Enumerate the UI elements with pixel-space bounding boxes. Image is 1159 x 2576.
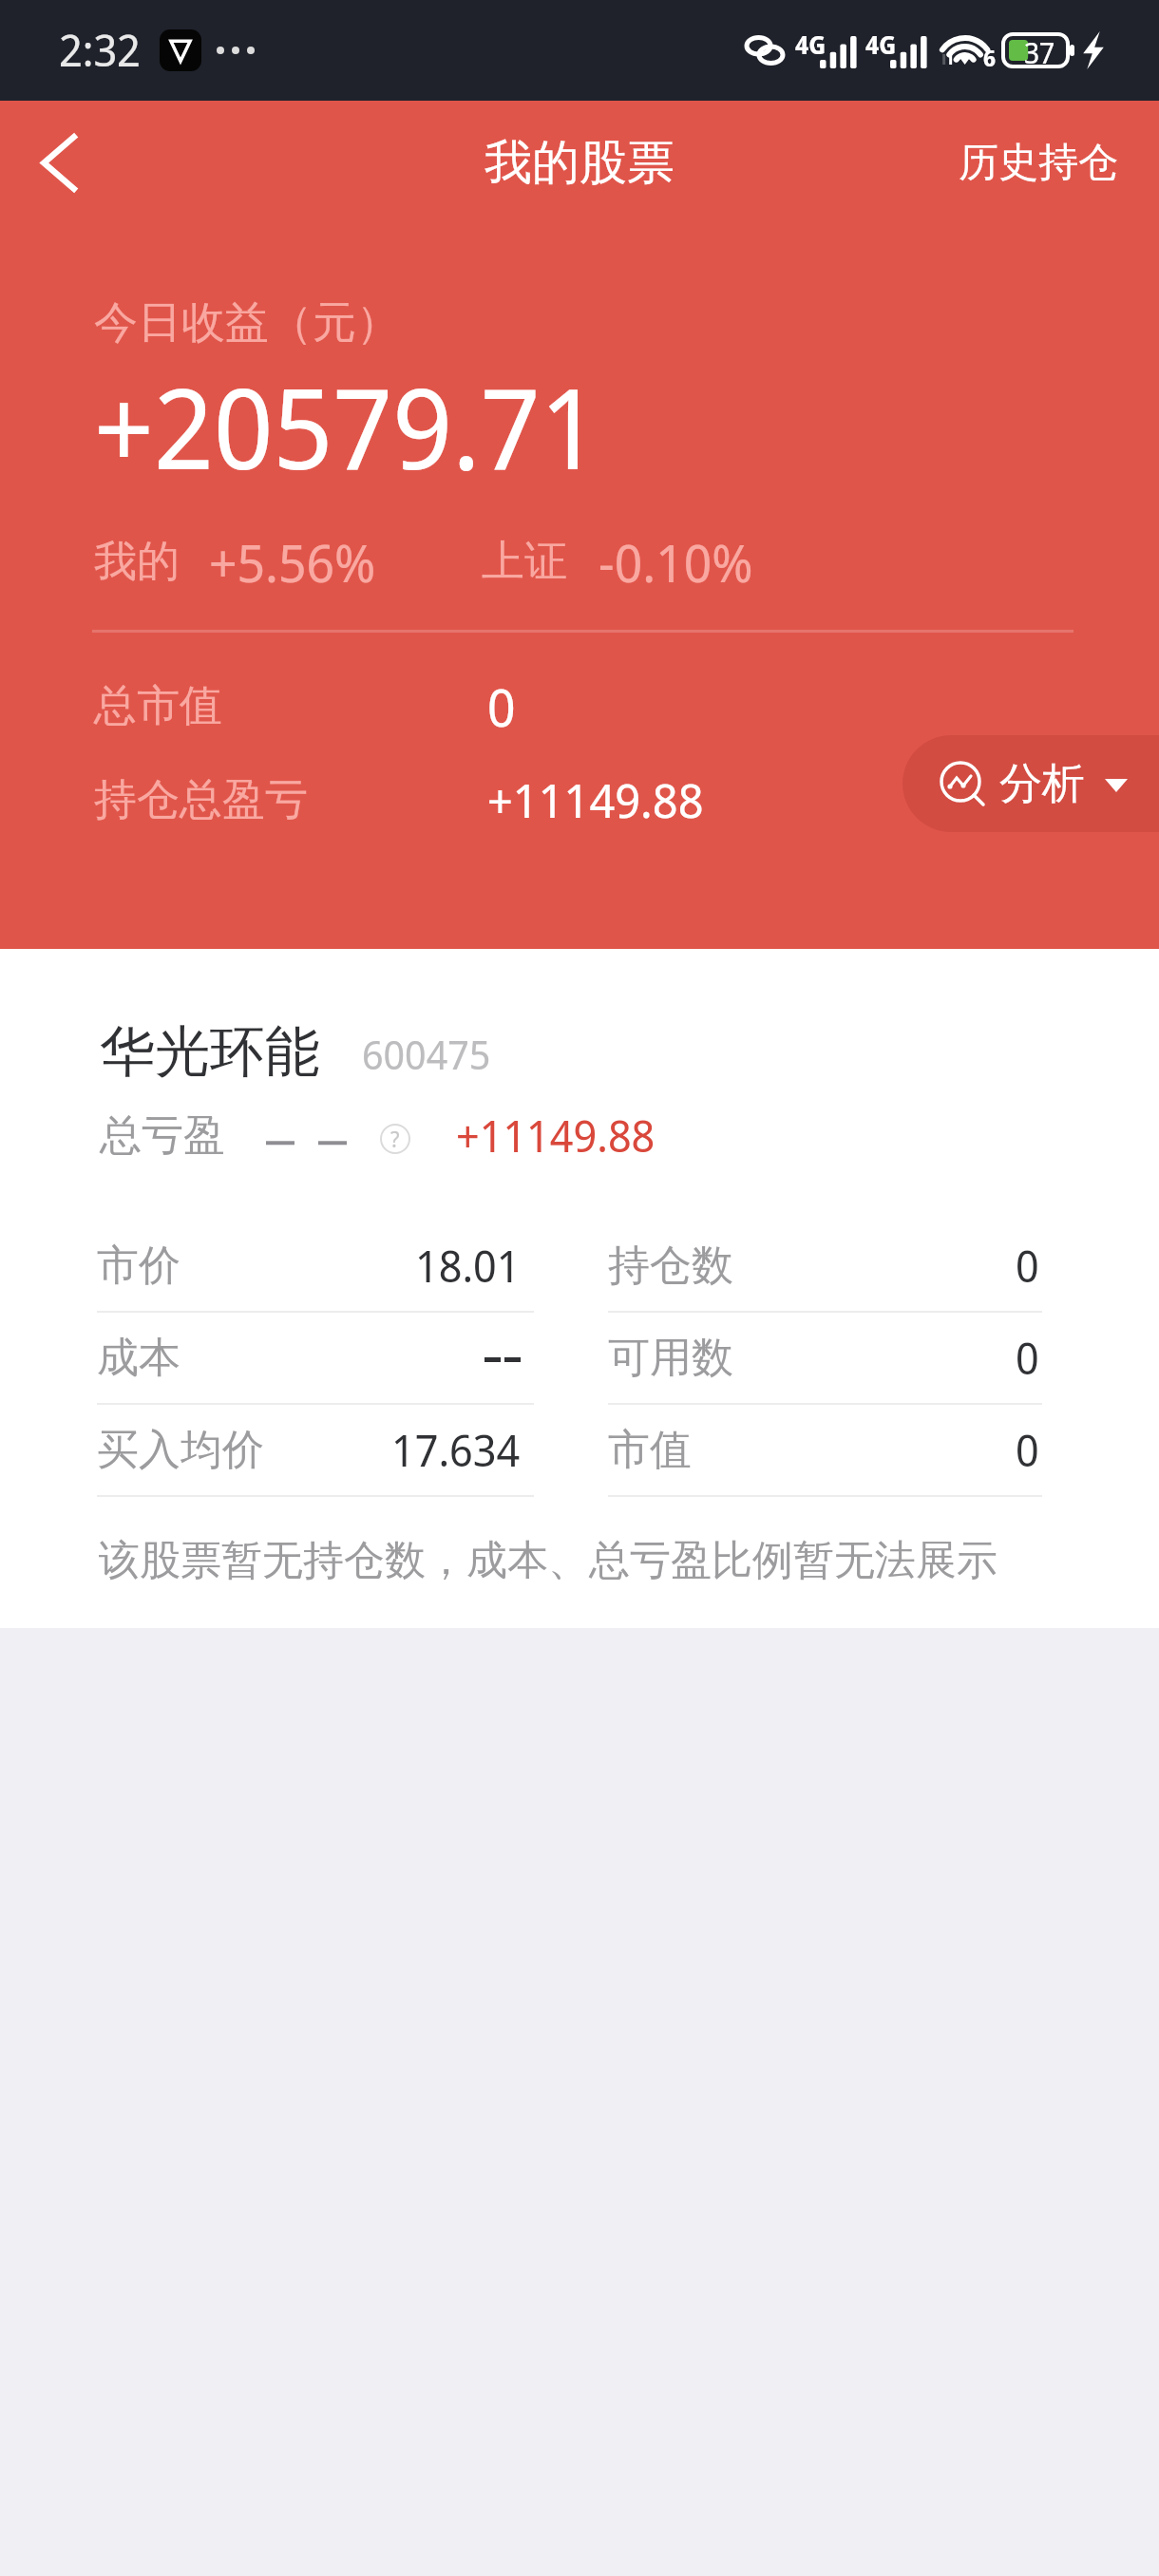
staticText: 上证 xyxy=(482,535,567,589)
staticText: 0 xyxy=(1016,1420,1039,1480)
staticText: 0 xyxy=(487,671,516,742)
button[interactable]: Back xyxy=(0,101,118,224)
staticText: 可用数 xyxy=(608,1332,733,1384)
staticText: 成本 xyxy=(97,1332,180,1384)
staticText: +5.56% xyxy=(209,526,376,597)
staticText: +20579.71 xyxy=(94,350,600,502)
staticText: 17.634 xyxy=(391,1420,521,1480)
staticText: 37 xyxy=(1024,33,1055,66)
button[interactable]: 分析 xyxy=(902,735,1159,832)
staticText: 买入均价 xyxy=(97,1424,264,1476)
staticText: -0.10% xyxy=(598,526,753,597)
staticText: 华光环能 xyxy=(100,1017,320,1087)
staticText: 今日收益（元） xyxy=(94,295,400,350)
button[interactable]: 历史持仓 xyxy=(918,107,1159,218)
staticText: 4G xyxy=(795,28,826,61)
staticText: 600475 xyxy=(362,1027,491,1081)
staticText: 18.01 xyxy=(415,1236,521,1296)
staticText: 总亏盈 xyxy=(100,1109,225,1162)
staticText: 2:32 xyxy=(59,20,141,80)
staticText: 6 xyxy=(983,42,997,73)
staticText: 历史持仓 xyxy=(959,138,1118,188)
button[interactable]: 华光环能 xyxy=(0,949,1159,1628)
staticText: ? xyxy=(390,1124,400,1153)
staticText: 我的 xyxy=(94,535,180,589)
staticText: +11149.88 xyxy=(487,767,704,832)
staticText: 持仓数 xyxy=(608,1240,733,1292)
staticText: 市值 xyxy=(608,1424,692,1476)
staticText: 分析 xyxy=(999,757,1085,811)
staticText: 0 xyxy=(1016,1328,1039,1388)
staticText: 总市值 xyxy=(94,679,222,733)
staticText: 该股票暂无持仓数，成本、总亏盈比例暂无法展示 xyxy=(99,1535,997,1586)
staticText: 持仓总盈亏 xyxy=(94,773,308,827)
staticText: 0 xyxy=(1016,1236,1039,1296)
staticText: 市价 xyxy=(97,1240,180,1292)
staticText: 4G xyxy=(865,28,897,61)
staticText: +11149.88 xyxy=(456,1106,655,1165)
staticText: 我的股票 xyxy=(484,133,674,193)
